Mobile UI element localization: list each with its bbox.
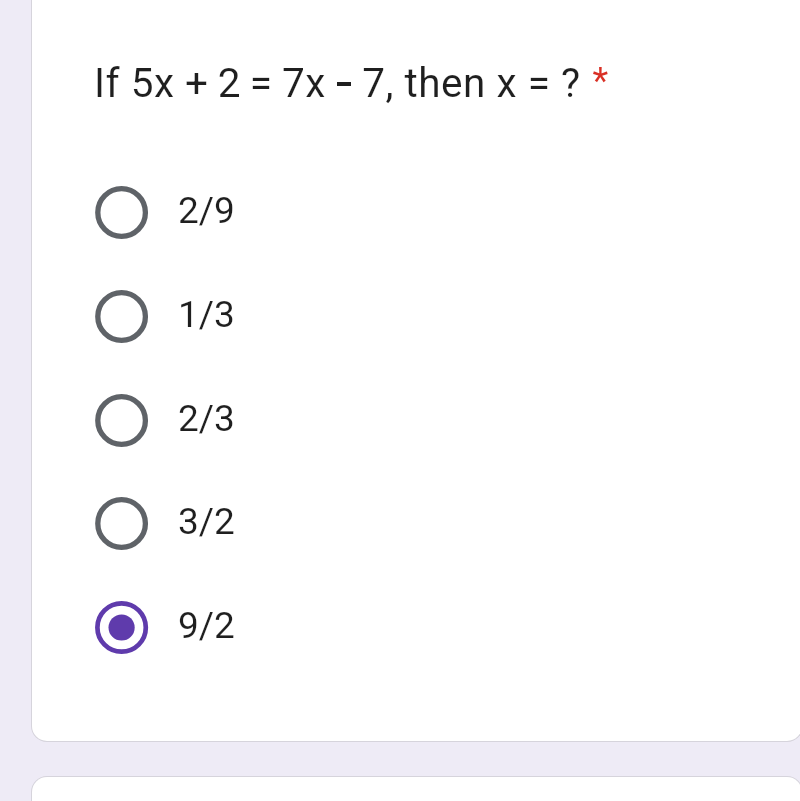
- staticText: 2/9: [178, 189, 235, 232]
- button[interactable]: Answer option 3/2: [81, 487, 741, 559]
- button[interactable]: Answer option 2/9: [81, 176, 741, 248]
- staticText: If 5x + 2 = 7x - 7, then x = ? *: [94, 59, 609, 107]
- staticText: 9/2: [178, 604, 235, 647]
- button[interactable]: Answer option 2/3: [81, 384, 741, 456]
- staticText: 1/3: [178, 293, 235, 336]
- staticText: 2/3: [178, 397, 235, 440]
- button[interactable]: Answer option 9/2: [81, 591, 741, 663]
- staticText: 3/2: [178, 500, 235, 543]
- button[interactable]: Answer option 1/3: [81, 280, 741, 352]
